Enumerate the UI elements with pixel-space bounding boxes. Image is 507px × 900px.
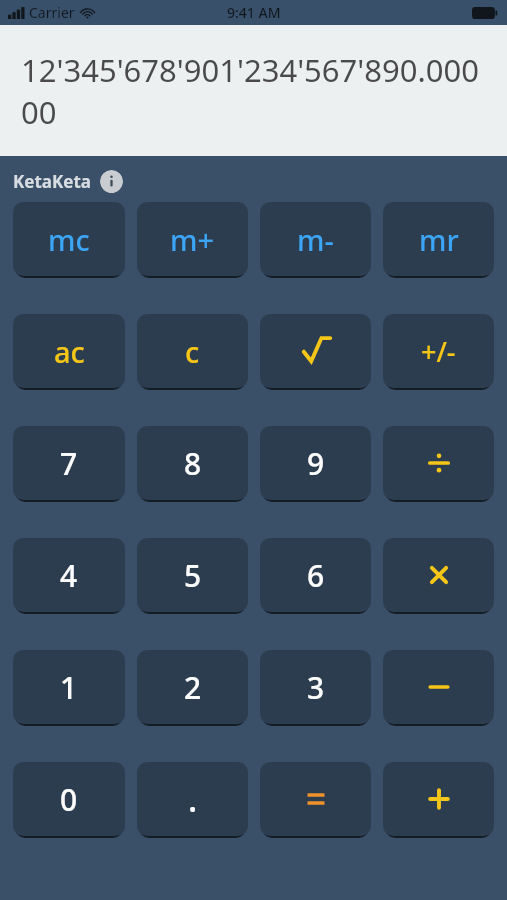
button[interactable]: Minus <box>383 650 494 724</box>
staticText: 4 <box>60 555 78 596</box>
staticText: . <box>188 776 198 822</box>
button[interactable]: 7 <box>13 426 125 500</box>
button[interactable]: m+ <box>137 202 248 276</box>
button[interactable]: 0 <box>13 762 125 836</box>
staticText: c <box>185 332 200 371</box>
staticText: +/- <box>421 333 456 370</box>
staticText: 3 <box>307 667 325 708</box>
button[interactable]: 2 <box>137 650 248 724</box>
button[interactable]: ac <box>13 314 125 388</box>
button[interactable]: Equals <box>260 762 371 836</box>
button[interactable]: 9 <box>260 426 371 500</box>
button[interactable]: 4 <box>13 538 125 612</box>
button[interactable]: Divide <box>383 426 494 500</box>
button[interactable]: Info <box>100 170 123 193</box>
staticText: 0 <box>60 779 78 820</box>
staticText: 9 <box>307 443 325 484</box>
button[interactable]: 5 <box>137 538 248 612</box>
staticText: ac <box>54 332 85 371</box>
staticText: 8 <box>184 443 202 484</box>
staticText: mc <box>48 220 90 259</box>
staticText: KetaKeta <box>13 170 91 193</box>
button[interactable]: mc <box>13 202 125 276</box>
staticText: m+ <box>170 220 215 259</box>
staticText: 12'345'678'901'234'567'890.00000 <box>21 49 495 133</box>
button[interactable]: mr <box>383 202 494 276</box>
staticText: 1 <box>60 667 78 708</box>
button[interactable]: 8 <box>137 426 248 500</box>
button[interactable]: 3 <box>260 650 371 724</box>
staticText: 9:41 AM <box>227 3 281 22</box>
button[interactable]: . <box>137 762 248 836</box>
button[interactable]: Multiply <box>383 538 494 612</box>
button[interactable]: m- <box>260 202 371 276</box>
staticText: 6 <box>307 555 325 596</box>
button[interactable]: 1 <box>13 650 125 724</box>
button[interactable]: Plus <box>383 762 494 836</box>
staticText: 5 <box>184 555 202 596</box>
staticText: Carrier <box>29 3 75 22</box>
staticText: 7 <box>60 443 78 484</box>
staticText: mr <box>419 220 459 259</box>
button[interactable]: +/- <box>383 314 494 388</box>
button[interactable]: Square root <box>260 314 371 388</box>
staticText: m- <box>297 220 334 259</box>
button[interactable]: c <box>137 314 248 388</box>
staticText: 2 <box>184 667 202 708</box>
button[interactable]: 6 <box>260 538 371 612</box>
